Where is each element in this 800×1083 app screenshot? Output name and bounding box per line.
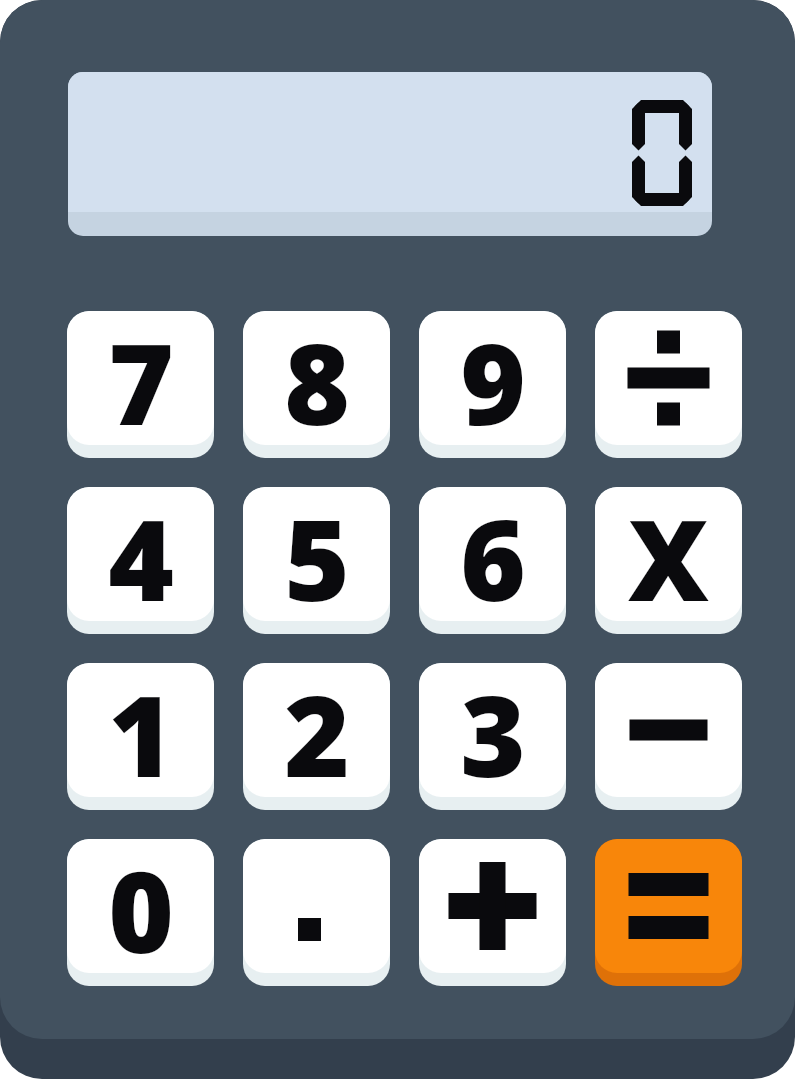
button[interactable]: 4 <box>67 487 214 634</box>
staticText: 0 <box>108 839 174 980</box>
staticText: 9 <box>460 311 526 452</box>
button[interactable]: 1 <box>67 663 214 810</box>
button[interactable]: Plus <box>419 839 566 986</box>
button[interactable]: Divide <box>595 311 742 458</box>
button[interactable]: Equals <box>595 839 742 986</box>
button[interactable]: 3 <box>419 663 566 810</box>
button[interactable]: 6 <box>419 487 566 634</box>
staticText: 8 <box>284 311 350 452</box>
staticText: 4 <box>108 487 174 628</box>
staticText: 6 <box>460 487 526 628</box>
staticText: 3 <box>460 663 526 804</box>
button[interactable]: Minus <box>595 663 742 810</box>
button[interactable]: 7 <box>67 311 214 458</box>
button[interactable]: 8 <box>243 311 390 458</box>
staticText: 5 <box>284 487 350 628</box>
button[interactable]: 2 <box>243 663 390 810</box>
button[interactable]: 9 <box>419 311 566 458</box>
button[interactable]: X <box>595 487 742 634</box>
button[interactable]: Decimal point <box>243 839 390 986</box>
staticText: 2 <box>284 663 350 804</box>
button[interactable]: 0 <box>67 839 214 986</box>
staticText: 7 <box>108 311 174 452</box>
button[interactable]: 5 <box>243 487 390 634</box>
staticText: X <box>628 487 709 628</box>
staticText: 1 <box>108 663 174 804</box>
